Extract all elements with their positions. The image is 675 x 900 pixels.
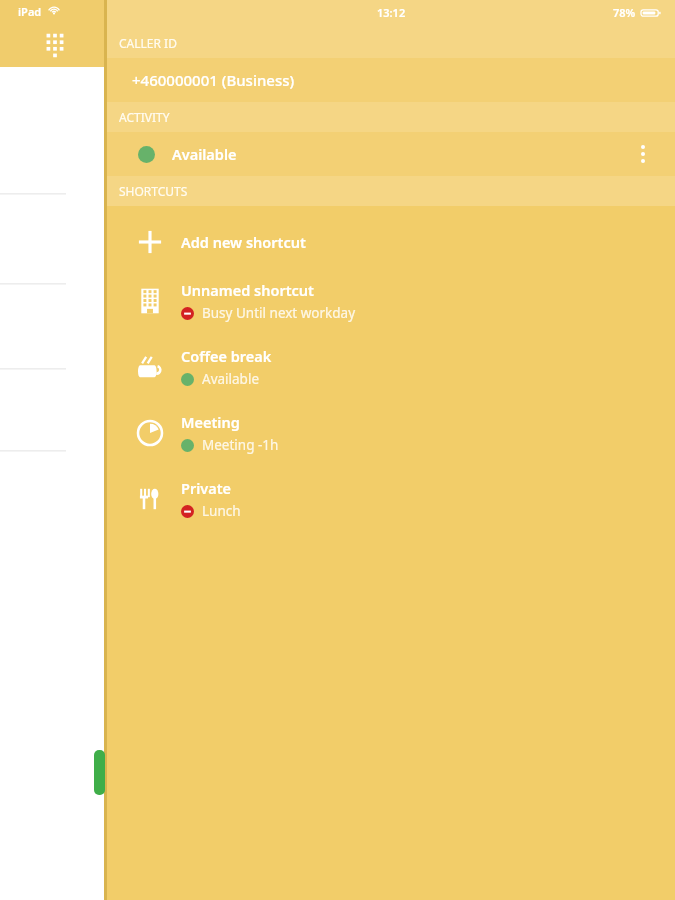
staticText: CALLER ID [119,35,177,51]
staticText: ACTIVITY [119,109,170,125]
staticText: Coffee break [181,346,272,366]
staticText: SHORTCUTS [119,183,188,199]
button[interactable]: More options [625,136,661,172]
button[interactable]: Private [107,466,675,532]
staticText: Meeting -1h [202,436,279,454]
button[interactable]: Unnamed shortcut [107,268,675,334]
button[interactable]: Dial pad [40,28,70,58]
staticText: Add new shortcut [181,232,306,252]
staticText: Private [181,478,232,498]
staticText: +460000001 (Business) [132,70,295,90]
button[interactable]: Coffee break [107,334,675,400]
button[interactable]: Drag handle [94,750,105,795]
staticText: Unnamed shortcut [181,280,315,300]
staticText: Available [202,370,259,388]
staticText: Meeting [181,412,240,432]
staticText: Busy Until next workday [202,304,356,322]
staticText: 78% [613,5,636,20]
staticText: 13:12 [377,5,406,20]
button[interactable]: Available [107,132,675,176]
button[interactable]: +460000001 (Business) [107,58,675,102]
button[interactable]: Add new shortcut [107,216,675,268]
staticText: Lunch [202,502,241,520]
staticText: Available [172,144,237,164]
staticText: iPad [18,4,42,19]
button[interactable]: Meeting [107,400,675,466]
